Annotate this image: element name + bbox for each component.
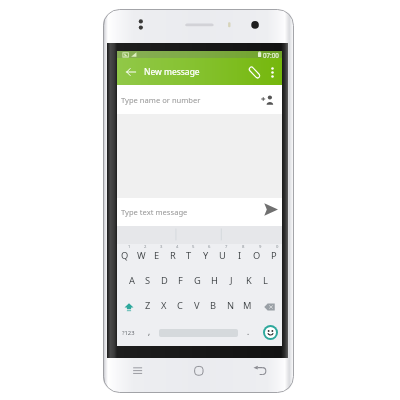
staticText: 5	[192, 244, 195, 250]
staticText: R	[170, 249, 176, 262]
staticText: M	[243, 299, 252, 312]
button[interactable]: F	[172, 269, 189, 294]
staticText: 0	[276, 244, 279, 250]
button[interactable]: A	[124, 269, 140, 294]
staticText: C	[177, 299, 183, 312]
staticText: Q	[121, 249, 129, 262]
button[interactable]: .	[238, 319, 259, 346]
staticText: G	[194, 274, 201, 287]
button[interactable]: 8	[231, 244, 248, 269]
staticText: S	[145, 274, 151, 287]
button[interactable]: K	[240, 269, 257, 294]
staticText: J	[230, 274, 233, 287]
button[interactable]: C	[172, 294, 188, 319]
staticText: 07:00	[263, 51, 279, 58]
staticText: 2	[144, 244, 147, 250]
button[interactable]: 0	[265, 244, 282, 269]
staticText: K	[246, 274, 252, 287]
staticText: A	[129, 274, 135, 287]
button[interactable]: Add contact	[260, 92, 276, 108]
button[interactable]: M	[239, 294, 256, 319]
button[interactable]: ?123	[117, 319, 140, 346]
button[interactable]: Emoji	[259, 319, 282, 346]
staticText: Y	[203, 249, 209, 262]
staticText: L	[263, 274, 268, 287]
staticText: Z	[145, 299, 151, 312]
button[interactable]: J	[223, 269, 240, 294]
button[interactable]: Attach	[244, 62, 264, 82]
staticText: 7	[225, 244, 228, 250]
staticText: H	[211, 274, 218, 287]
button[interactable]: X	[156, 294, 172, 319]
button[interactable]: Back	[121, 62, 141, 82]
button[interactable]: 3	[149, 244, 165, 269]
staticText: 8	[242, 244, 245, 250]
staticText: 6	[208, 244, 211, 250]
staticText: I	[238, 249, 242, 262]
button[interactable]: B	[205, 294, 222, 319]
staticText: F	[178, 274, 183, 287]
staticText: .	[247, 326, 250, 337]
button[interactable]: Shift	[117, 294, 140, 319]
button[interactable]: Backspace	[256, 294, 282, 319]
button[interactable]: More options	[264, 64, 280, 80]
button[interactable]: 1	[117, 244, 133, 269]
button[interactable]: Send	[262, 200, 280, 218]
staticText: 9	[259, 244, 262, 250]
staticText: Type name or number	[121, 95, 201, 105]
button[interactable]: Space	[159, 319, 238, 346]
staticText: 4	[176, 244, 179, 250]
button[interactable]: 9	[248, 244, 265, 269]
button[interactable]: G	[189, 269, 206, 294]
staticText: ?123	[122, 329, 135, 337]
staticText: ,	[148, 326, 151, 337]
staticText: O	[253, 249, 261, 262]
staticText: X	[161, 299, 167, 312]
button[interactable]: 7	[214, 244, 231, 269]
staticText: P	[271, 249, 277, 262]
staticText: N	[227, 299, 235, 312]
button[interactable]: 2	[133, 244, 149, 269]
staticText: 3	[160, 244, 163, 250]
button[interactable]: Z	[140, 294, 156, 319]
staticText: D	[161, 274, 168, 287]
button[interactable]: H	[206, 269, 223, 294]
staticText: U	[219, 249, 226, 262]
button[interactable]: S	[140, 269, 156, 294]
button[interactable]: 5	[181, 244, 197, 269]
staticText: B	[210, 299, 217, 312]
button[interactable]: ,	[140, 319, 159, 346]
staticText: 1	[128, 244, 131, 250]
staticText: New message	[144, 66, 200, 78]
staticText: T	[186, 249, 192, 262]
button[interactable]: 6	[197, 244, 214, 269]
button[interactable]: V	[188, 294, 205, 319]
button[interactable]: 4	[165, 244, 181, 269]
button[interactable]: N	[222, 294, 239, 319]
staticText: V	[194, 299, 200, 312]
staticText: W	[137, 249, 146, 262]
button[interactable]: D	[156, 269, 172, 294]
button[interactable]: L	[257, 269, 274, 294]
staticText: Type text message	[121, 207, 188, 217]
staticText: E	[154, 249, 160, 262]
